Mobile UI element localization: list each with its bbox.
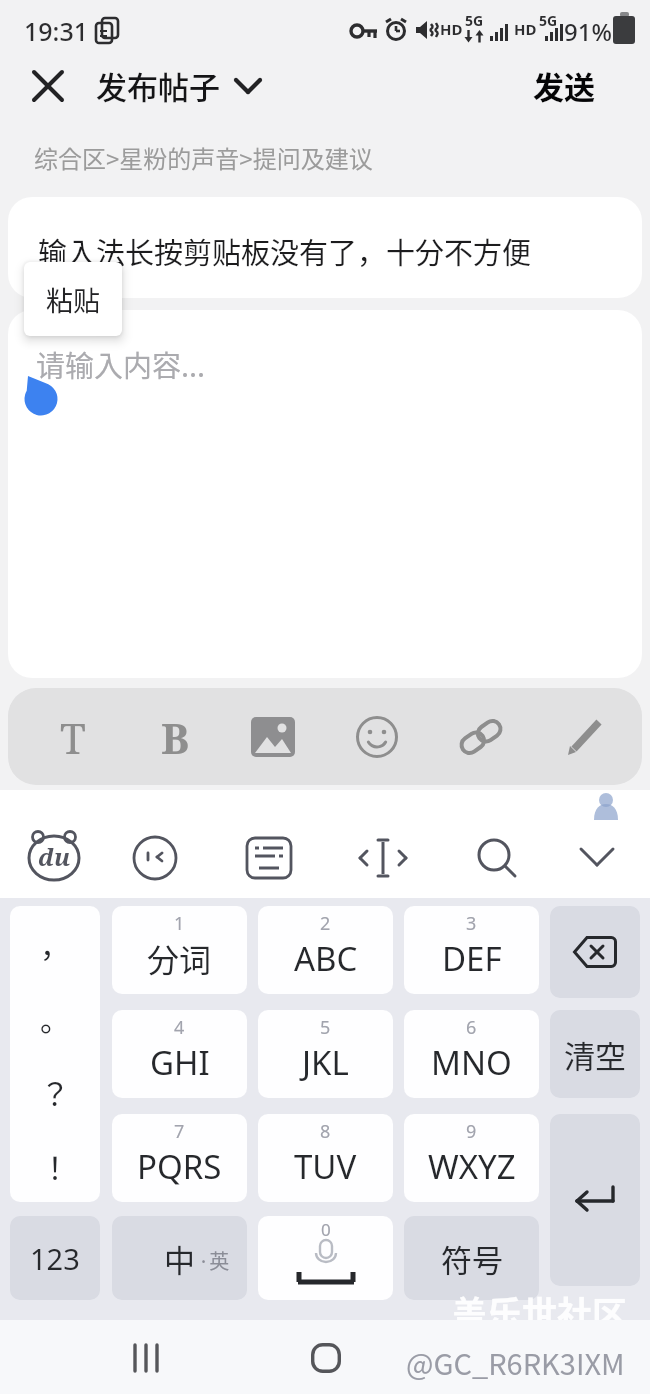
button[interactable] (446, 702, 516, 772)
staticText: 91% (564, 15, 612, 48)
staticText: 分词 (147, 935, 212, 981)
button[interactable] (238, 830, 300, 886)
button[interactable] (342, 702, 412, 772)
button[interactable] (466, 830, 528, 886)
button[interactable]: 1 (112, 906, 247, 994)
staticText: PQRS (137, 1144, 222, 1189)
button[interactable]: 发布帖子 (96, 60, 272, 112)
staticText: DEF (442, 936, 502, 981)
staticText: 2 (320, 911, 331, 933)
staticText: HD (440, 19, 463, 39)
staticText: MNO (431, 1040, 512, 1085)
button[interactable]: 4 (112, 1010, 247, 1098)
staticText: 输入法长按剪贴板没有了，十分不方便 (38, 230, 532, 272)
button[interactable]: ， (10, 906, 100, 1202)
button[interactable]: 符号 (404, 1216, 539, 1300)
button[interactable]: T (38, 702, 108, 772)
staticText: 发布帖子 (96, 63, 220, 108)
staticText: ， (40, 922, 70, 965)
button[interactable]: 9 (404, 1114, 539, 1202)
staticText: B (161, 709, 190, 766)
staticText: 中 (164, 1236, 195, 1281)
staticText: 5G (539, 11, 558, 30)
button[interactable]: B (140, 702, 210, 772)
staticText: 4 (174, 1015, 185, 1037)
staticText: 9 (466, 1119, 477, 1141)
staticText: 0 (321, 1218, 331, 1238)
staticText: 1 (174, 911, 185, 933)
button[interactable]: 请输入内容... (8, 310, 642, 678)
button[interactable] (238, 702, 308, 772)
button[interactable]: 中 (112, 1216, 247, 1300)
button[interactable]: 5 (258, 1010, 393, 1098)
button[interactable] (550, 1114, 640, 1286)
staticText: WXYZ (428, 1144, 516, 1189)
button[interactable]: 发送 (516, 58, 612, 112)
button[interactable]: du (22, 826, 86, 886)
button[interactable]: 2 (258, 906, 393, 994)
staticText: 综合区>星粉的声音>提问及建议 (34, 140, 373, 175)
staticText: 123 (30, 1239, 80, 1278)
staticText: ABC (294, 936, 358, 981)
button[interactable]: 清空 (550, 1010, 640, 1098)
staticText: @GC_R6RK3IXM (406, 1341, 625, 1383)
staticText: ！ (40, 1144, 70, 1187)
staticText: 发送 (533, 63, 595, 108)
staticText: HD (514, 19, 537, 39)
staticText: T (60, 709, 86, 766)
staticText: 。 (40, 996, 70, 1039)
staticText: 19:31 (24, 14, 89, 48)
staticText: 3 (466, 911, 477, 933)
staticText: JKL (302, 1040, 349, 1085)
button[interactable] (550, 702, 620, 772)
staticText: ·英 (198, 1246, 230, 1275)
staticText: 盖乐世社区 (452, 1286, 628, 1337)
button[interactable] (114, 1330, 178, 1386)
button[interactable]: 输入法长按剪贴板没有了，十分不方便 (8, 197, 642, 298)
button[interactable]: 7 (112, 1114, 247, 1202)
button[interactable]: 粘贴 (24, 262, 122, 336)
staticText: 8 (320, 1119, 331, 1141)
staticText: 5G (465, 11, 484, 30)
button[interactable]: 3 (404, 906, 539, 994)
button[interactable]: 0 (258, 1216, 393, 1300)
button[interactable] (124, 830, 186, 886)
button[interactable] (294, 1330, 358, 1386)
button[interactable] (550, 906, 640, 998)
staticText: 请输入内容... (36, 343, 206, 385)
staticText: ？ (40, 1070, 70, 1113)
button[interactable]: 8 (258, 1114, 393, 1202)
staticText: 粘贴 (46, 280, 100, 319)
staticText: GHI (150, 1040, 210, 1085)
staticText: du (38, 840, 71, 873)
staticText: 6 (466, 1015, 477, 1037)
staticText: 清空 (564, 1032, 626, 1077)
button[interactable] (20, 58, 76, 114)
button[interactable] (566, 830, 628, 886)
button[interactable]: 123 (10, 1216, 100, 1300)
button[interactable]: 6 (404, 1010, 539, 1098)
staticText: 5 (320, 1015, 331, 1037)
staticText: 7 (174, 1119, 185, 1141)
staticText: TUV (294, 1144, 357, 1189)
button[interactable] (352, 830, 414, 886)
staticText: 符号 (441, 1236, 503, 1281)
